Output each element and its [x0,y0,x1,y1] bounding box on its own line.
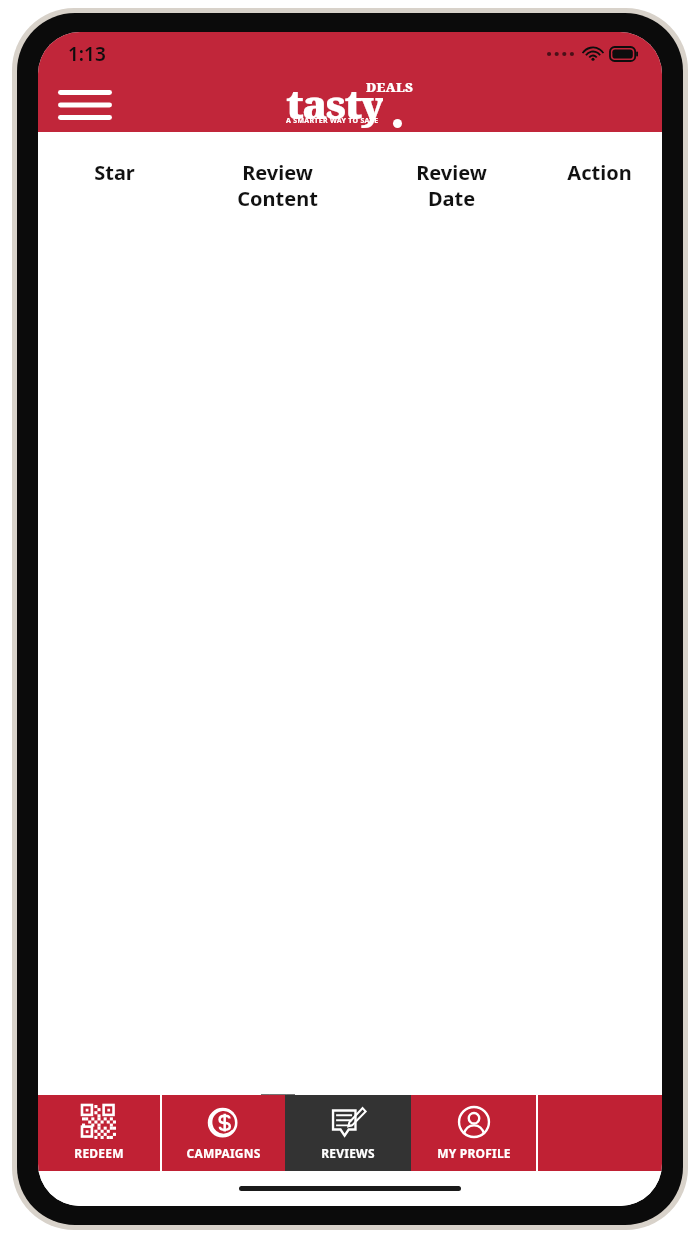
button[interactable]: CAMPAIGNS [162,1095,285,1171]
staticText: A SMARTER WAY TO SAVE [286,116,379,126]
staticText: tasty [286,76,383,128]
staticText: Review Date [416,159,487,211]
staticText: Action [567,159,632,186]
button[interactable]: REVIEWS [285,1095,411,1171]
staticText: Review Content [237,159,318,211]
button[interactable]: MY PROFILE [411,1095,536,1171]
button[interactable]: Menu [52,83,118,127]
staticText: CAMPAIGNS [186,1145,261,1161]
staticText: DEALS [366,78,414,96]
staticText: 1:13 [68,41,106,67]
button[interactable]: REDEEM [38,1095,160,1171]
staticText: REDEEM [74,1145,124,1161]
staticText: REVIEWS [321,1145,375,1161]
staticText: MY PROFILE [437,1145,511,1161]
staticText: Star [94,159,135,186]
